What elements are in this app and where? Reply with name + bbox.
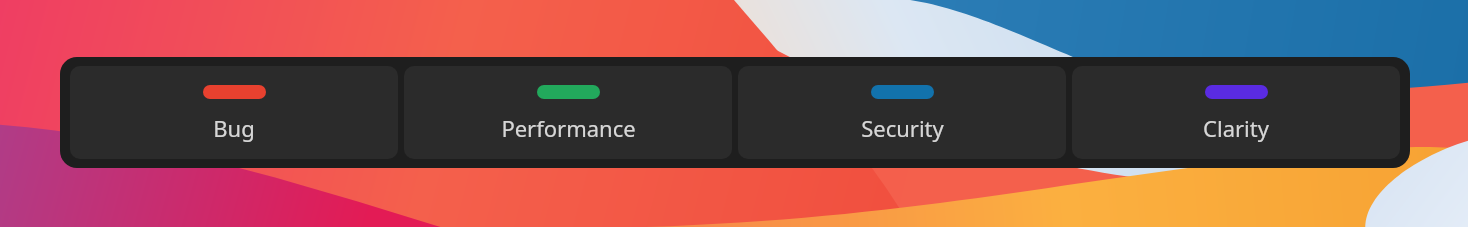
other: Clarity colour <box>1205 85 1268 99</box>
button[interactable]: Performance colour <box>404 66 732 159</box>
other: Bug colour <box>203 85 266 99</box>
staticText: Clarity <box>1203 113 1269 143</box>
staticText: Security <box>861 113 944 143</box>
button[interactable]: Security colour <box>738 66 1066 159</box>
other: Performance colour <box>537 85 600 99</box>
other: Security colour <box>871 85 934 99</box>
button[interactable]: Clarity colour <box>1072 66 1400 159</box>
button[interactable]: Bug colour <box>70 66 398 159</box>
staticText: Bug <box>213 113 255 143</box>
staticText: Performance <box>501 113 636 143</box>
